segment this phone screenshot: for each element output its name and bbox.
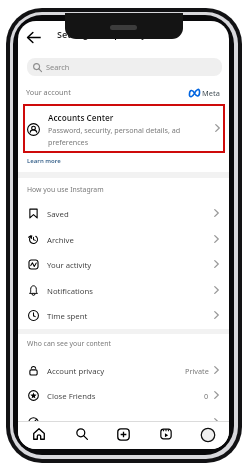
staticText: Your activity [47, 260, 92, 271]
staticText: Accounts Center [48, 112, 114, 123]
button[interactable]: Profile [197, 424, 219, 446]
staticText: Search [46, 62, 70, 72]
button[interactable]: Search [27, 58, 222, 76]
button[interactable]: Notifications [18, 277, 229, 303]
staticText: Settings and privacy [57, 28, 147, 40]
button[interactable]: Account privacy [18, 357, 229, 383]
button[interactable]: Blocked [18, 409, 229, 435]
button[interactable]: Accounts Center [23, 104, 225, 153]
staticText: Account privacy [47, 366, 105, 377]
staticText: Time spent [47, 311, 88, 322]
staticText: Saved [47, 209, 69, 220]
staticText: Blocked [47, 418, 76, 429]
button[interactable]: Time spent [18, 302, 229, 328]
staticText: Private [185, 366, 209, 376]
staticText: Learn more [27, 157, 61, 165]
staticText: Close Friends [47, 391, 96, 402]
staticText: How you use Instagram [27, 185, 104, 194]
staticText: Password, security, personal details, ad… [48, 125, 188, 147]
staticText: Who can see your content [27, 339, 111, 348]
button[interactable]: Saved [18, 200, 229, 226]
staticText: Notifications [47, 286, 94, 297]
button[interactable]: Archive [18, 226, 229, 252]
button[interactable]: Your activity [18, 251, 229, 277]
button[interactable]: Close Friends [18, 382, 229, 408]
button[interactable]: Back [27, 32, 41, 43]
staticText: Archive [47, 235, 74, 246]
staticText: 0 [204, 391, 209, 401]
button[interactable]: Learn more [27, 157, 61, 165]
button[interactable]: Home [28, 423, 50, 445]
button[interactable]: Reels [155, 423, 177, 445]
staticText: Your account [26, 87, 71, 97]
button[interactable]: Search [71, 423, 93, 445]
staticText: Meta [202, 88, 220, 98]
button[interactable]: Create [112, 423, 134, 445]
